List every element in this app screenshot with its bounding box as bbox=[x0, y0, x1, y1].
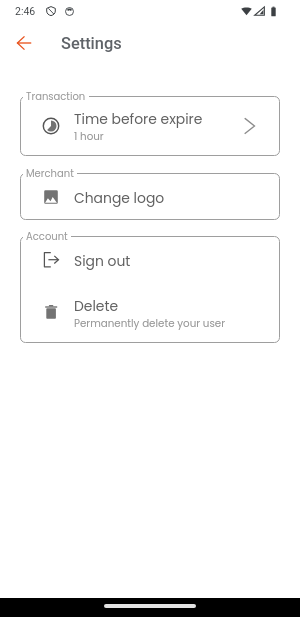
staticText: Settings bbox=[61, 34, 122, 53]
button[interactable]: Back bbox=[6, 25, 42, 61]
button[interactable]: Sign out bbox=[20, 236, 280, 282]
staticText: 1 hour bbox=[74, 129, 104, 143]
staticText: Permanently delete your user bbox=[74, 316, 226, 330]
button[interactable]: Delete bbox=[20, 282, 280, 343]
staticText: Transaction bbox=[26, 89, 86, 103]
staticText: Sign out bbox=[74, 251, 131, 270]
button[interactable]: Time before expire bbox=[20, 96, 280, 156]
staticText: Delete bbox=[74, 296, 119, 315]
button[interactable]: Change logo bbox=[20, 173, 280, 220]
staticText: Merchant bbox=[26, 166, 74, 180]
staticText: Change logo bbox=[74, 188, 165, 207]
staticText: Time before expire bbox=[74, 109, 203, 128]
staticText: 2:46 bbox=[15, 5, 36, 17]
staticText: Account bbox=[26, 229, 68, 243]
